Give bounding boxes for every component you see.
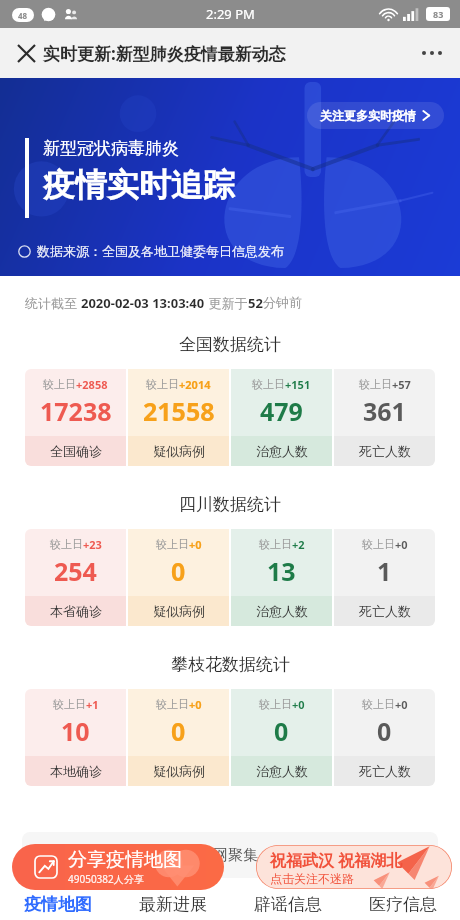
staticText: 479 <box>260 394 303 428</box>
button[interactable]: 较上日 <box>128 529 229 626</box>
staticText: 较上日 <box>259 537 292 551</box>
staticText: 医疗信息 <box>369 894 437 915</box>
staticText: 较上日 <box>53 697 86 711</box>
staticText: +23 <box>83 537 102 552</box>
staticText: 关注更多实时疫情 <box>320 108 416 123</box>
staticText: 疑似病例 <box>153 443 205 459</box>
staticText: 较上日 <box>259 697 292 711</box>
staticText: 48 <box>18 10 28 21</box>
staticText: +151 <box>285 377 311 392</box>
staticText: 较上日 <box>362 537 395 551</box>
staticText: +2014 <box>179 377 211 392</box>
staticText: 较上日 <box>156 697 189 711</box>
staticText: 13 <box>267 554 296 588</box>
staticText: 21558 <box>143 394 215 428</box>
staticText: 较上日 <box>362 697 395 711</box>
staticText: +2 <box>292 537 305 552</box>
staticText: 较上日 <box>252 377 285 391</box>
button[interactable]: 较上日 <box>334 689 435 786</box>
staticText: 较上日 <box>156 537 189 551</box>
button[interactable]: 医疗信息 <box>345 888 460 920</box>
staticText: 四川数据统计 <box>179 494 281 515</box>
staticText: 辟谣信息 <box>254 894 322 915</box>
staticText: +0 <box>189 537 202 552</box>
staticText: 治愈人数 <box>256 443 308 459</box>
button[interactable]: More options <box>412 33 452 73</box>
staticText: 攀枝花数据统计 <box>171 654 290 675</box>
staticText: 本省确诊 <box>50 603 102 619</box>
staticText: +0 <box>395 537 408 552</box>
staticText: 全国确诊 <box>50 443 102 459</box>
button[interactable]: 较上日 <box>231 369 332 466</box>
staticText: 新型冠状病毒肺炎 <box>43 138 179 159</box>
staticText: 52 <box>248 294 263 312</box>
staticText: 2:29 PM <box>206 5 255 23</box>
staticText: 较上日 <box>359 377 392 391</box>
staticText: 1 <box>377 554 392 588</box>
staticText: +1 <box>86 697 99 712</box>
staticText: 治愈人数 <box>256 763 308 779</box>
staticText: 点击关注不迷路 <box>270 871 354 886</box>
button[interactable]: 较上日 <box>128 689 229 786</box>
staticText: +0 <box>189 697 202 712</box>
button[interactable]: 较上日 <box>25 529 126 626</box>
button[interactable]: Close <box>8 35 44 71</box>
button[interactable]: 分享疫情地图 <box>12 844 224 890</box>
staticText: 死亡人数 <box>359 603 411 619</box>
staticText: 0 <box>171 714 186 748</box>
staticText: 0 <box>377 714 392 748</box>
staticText: 较上日 <box>50 537 83 551</box>
button[interactable]: 辟谣信息 <box>230 888 345 920</box>
staticText: 较上日 <box>146 377 179 391</box>
staticText: +57 <box>392 377 411 392</box>
button[interactable]: 较上日 <box>128 369 229 466</box>
staticText: 疑似病例 <box>153 763 205 779</box>
staticText: 网聚集 <box>213 846 258 865</box>
button[interactable]: 较上日 <box>334 529 435 626</box>
staticText: 治愈人数 <box>256 603 308 619</box>
staticText: 疑似病例 <box>153 603 205 619</box>
staticText: 祝福武汉 祝福湖北 <box>270 849 403 871</box>
button[interactable]: 较上日 <box>231 529 332 626</box>
staticText: 0 <box>171 554 186 588</box>
staticText: 更新于 <box>205 294 248 312</box>
staticText: 本地确诊 <box>50 763 102 779</box>
staticText: 统计截至 <box>25 294 81 312</box>
staticText: 全国数据统计 <box>179 334 281 355</box>
staticText: 361 <box>363 394 406 428</box>
staticText: +0 <box>395 697 408 712</box>
staticText: 实时更新:新型肺炎疫情最新动态 <box>43 42 286 65</box>
button[interactable]: 较上日 <box>231 689 332 786</box>
button[interactable]: 较上日 <box>25 369 126 466</box>
staticText: 83 <box>433 8 444 20</box>
staticText: 0 <box>274 714 289 748</box>
staticText: 254 <box>54 554 97 588</box>
staticText: 死亡人数 <box>359 443 411 459</box>
staticText: 疫情地图 <box>24 894 92 915</box>
button[interactable]: 疫情地图 <box>0 888 115 920</box>
staticText: 死亡人数 <box>359 763 411 779</box>
staticText: 分享疫情地图 <box>68 848 182 872</box>
button[interactable]: 祝福武汉 祝福湖北 <box>256 845 452 889</box>
button[interactable]: 最新进展 <box>115 888 230 920</box>
staticText: 49050382人分享 <box>68 872 144 886</box>
button[interactable]: 较上日 <box>334 369 435 466</box>
button[interactable]: 关注更多实时疫情 <box>307 102 444 129</box>
staticText: +0 <box>292 697 305 712</box>
staticText: 疫情实时追踪 <box>43 165 235 205</box>
staticText: 最新进展 <box>139 894 207 915</box>
staticText: +2858 <box>76 377 108 392</box>
staticText: 17238 <box>40 394 112 428</box>
button[interactable]: 较上日 <box>25 689 126 786</box>
staticText: 数据来源：全国及各地卫健委每日信息发布 <box>37 243 284 259</box>
staticText: 10 <box>61 714 90 748</box>
staticText: 较上日 <box>43 377 76 391</box>
staticText: 分钟前 <box>263 294 302 310</box>
staticText: 2020-02-03 13:03:40 <box>81 294 205 312</box>
